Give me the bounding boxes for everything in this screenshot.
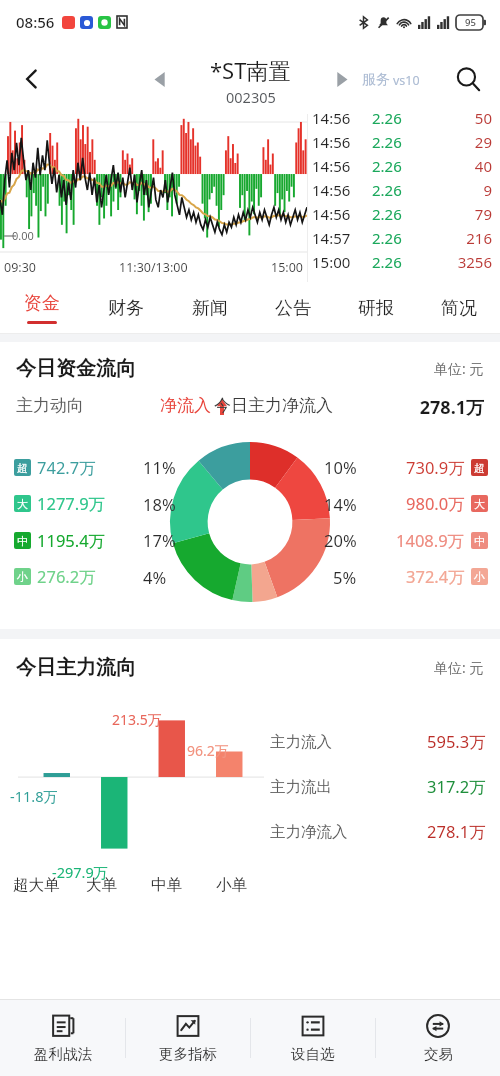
button[interactable]: 主力流入 xyxy=(270,730,486,753)
button[interactable]: 盈利战法 xyxy=(0,1000,125,1076)
button[interactable]: 超 xyxy=(14,456,96,479)
staticText: 11:30/13:00 xyxy=(119,259,188,276)
staticText: 14% xyxy=(324,493,357,515)
staticText: 20% xyxy=(324,529,357,551)
staticText: 主力净流入 xyxy=(270,822,348,842)
staticText: 2.26 xyxy=(372,252,432,272)
staticText: 超 xyxy=(17,461,28,475)
staticText: 276.2万 xyxy=(37,565,96,588)
staticText: 净流入 xyxy=(160,395,211,416)
button[interactable]: 372.4万 xyxy=(406,565,488,588)
staticText: 40 xyxy=(432,156,492,176)
button[interactable]: 14:56 xyxy=(312,202,492,226)
staticText: 79 xyxy=(432,204,492,224)
button[interactable]: 更多指标 xyxy=(126,1000,250,1076)
button[interactable]: 主力净流入 xyxy=(270,820,486,843)
button[interactable]: 返回 xyxy=(8,55,56,103)
staticText: 2.26 xyxy=(372,180,432,200)
staticText: 595.3万 xyxy=(427,730,486,753)
staticText: 980.0万 xyxy=(406,492,465,515)
staticText: 18% xyxy=(143,493,176,515)
staticText: 317.2万 xyxy=(427,775,486,798)
staticText: 设自选 xyxy=(291,1045,335,1063)
button[interactable]: 980.0万 xyxy=(406,492,488,515)
staticText: 主力动向 xyxy=(16,395,84,416)
staticText: 10% xyxy=(324,456,357,478)
staticText: 中 xyxy=(17,534,28,548)
staticText: 09:30 xyxy=(4,259,36,276)
staticText: 15:00 xyxy=(271,259,303,276)
staticText: 5% xyxy=(333,566,357,588)
button[interactable]: 主力流出 xyxy=(270,775,486,798)
staticText: 278.1万 xyxy=(0,395,484,420)
staticText: 14:56 xyxy=(312,204,372,224)
staticText: 278.1万 xyxy=(427,820,486,843)
button[interactable]: 1408.9万 xyxy=(396,529,488,552)
staticText: 主力流入 xyxy=(270,732,332,752)
staticText: 002305 xyxy=(226,87,276,107)
staticText: 交易 xyxy=(424,1045,453,1063)
button[interactable]: 研报 xyxy=(334,282,417,334)
button[interactable]: 搜索 xyxy=(444,55,492,103)
staticText: 1277.9万 xyxy=(37,492,106,515)
staticText: 95 xyxy=(465,16,476,29)
staticText: 大 xyxy=(474,497,485,511)
button[interactable]: 新闻 xyxy=(168,282,251,334)
button[interactable]: 公告 xyxy=(251,282,334,334)
staticText: 730.9万 xyxy=(406,456,465,479)
button[interactable]: 交易 xyxy=(376,1000,500,1076)
staticText: 超 xyxy=(474,461,485,475)
staticText: 2.26 xyxy=(372,156,432,176)
button[interactable]: 服务 xyxy=(362,71,420,89)
staticText: -297.9万 xyxy=(52,862,109,882)
button[interactable]: 财务 xyxy=(84,282,168,334)
staticText: 单位: 元 xyxy=(434,658,484,677)
staticText: 主力流出 xyxy=(270,777,332,797)
button[interactable]: 设自选 xyxy=(251,1000,375,1076)
staticText: 简况 xyxy=(441,297,477,320)
staticText: 公告 xyxy=(275,297,311,320)
staticText: 2.26 xyxy=(372,132,432,152)
staticText: 财务 xyxy=(108,297,144,320)
staticText: 2.26 xyxy=(372,228,432,248)
button[interactable]: 上一只 xyxy=(140,59,180,99)
button[interactable]: 14:56 xyxy=(312,154,492,178)
button[interactable]: 简况 xyxy=(417,282,500,334)
staticText: 11% xyxy=(143,456,176,478)
button[interactable]: 15:00 xyxy=(312,250,492,274)
staticText: 3256 xyxy=(432,252,492,272)
staticText: 今日主力流向 xyxy=(16,655,136,680)
staticText: 4% xyxy=(143,566,167,588)
button[interactable]: 14:56 xyxy=(312,130,492,154)
staticText: 17% xyxy=(143,529,176,551)
staticText: 29 xyxy=(432,132,492,152)
staticText: 216 xyxy=(432,228,492,248)
button[interactable]: 大 xyxy=(14,492,106,515)
staticText: 14:56 xyxy=(312,180,372,200)
staticText: 资金 xyxy=(24,292,60,315)
staticText: 213.5万 xyxy=(112,710,162,729)
staticText: 96.2万 xyxy=(187,741,229,760)
staticText: 742.7万 xyxy=(37,456,96,479)
staticText: 更多指标 xyxy=(159,1045,217,1063)
button[interactable]: 14:57 xyxy=(312,226,492,250)
staticText: 今日资金流向 xyxy=(16,356,136,381)
button[interactable]: 资金 xyxy=(0,282,84,334)
button[interactable]: 14:56 xyxy=(312,106,492,130)
staticText: 14:56 xyxy=(312,156,372,176)
staticText: 0.00 xyxy=(12,228,34,243)
staticText: 大单 xyxy=(86,875,117,895)
staticText: vs10 xyxy=(393,72,420,89)
button[interactable]: 小 xyxy=(14,565,96,588)
staticText: 小单 xyxy=(216,875,247,895)
button[interactable]: 730.9万 xyxy=(406,456,488,479)
staticText: 50 xyxy=(432,108,492,128)
staticText: 中 xyxy=(474,534,485,548)
button[interactable]: 下一只 xyxy=(322,60,360,98)
staticText: 单位: 元 xyxy=(434,359,484,378)
staticText: 新闻 xyxy=(192,297,228,320)
button[interactable]: 中 xyxy=(14,529,106,552)
button[interactable]: 14:56 xyxy=(312,178,492,202)
staticText: 372.4万 xyxy=(406,565,465,588)
staticText: -11.8万 xyxy=(10,786,58,806)
